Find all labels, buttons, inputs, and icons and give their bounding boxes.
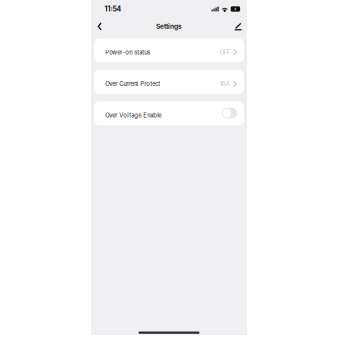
button[interactable]: Over Voltage Enable xyxy=(222,108,237,118)
button[interactable]: Power-on status xyxy=(94,38,244,62)
staticText: 11:54 xyxy=(104,5,121,13)
staticText: Power-on status xyxy=(105,49,150,56)
button[interactable]: Back xyxy=(93,22,106,31)
staticText: 16A xyxy=(220,80,230,87)
staticText: Settings xyxy=(156,22,182,30)
staticText: Over Voltage Enable xyxy=(105,112,161,119)
staticText: Over Current Protect xyxy=(105,80,160,87)
button[interactable]: Over Current Protect xyxy=(94,70,244,94)
staticText: OFF xyxy=(220,49,230,56)
button[interactable]: Edit xyxy=(231,22,245,31)
